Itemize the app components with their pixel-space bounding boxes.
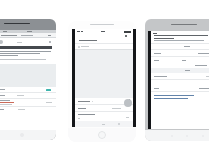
button[interactable] xyxy=(0,93,51,98)
button[interactable] xyxy=(0,100,52,105)
button[interactable] xyxy=(0,107,51,112)
button[interactable] xyxy=(154,73,209,79)
other: Edit xyxy=(126,99,130,103)
button[interactable] xyxy=(154,57,209,63)
button[interactable]: Edit xyxy=(78,98,130,104)
button[interactable] xyxy=(1,33,51,37)
button[interactable]: Expand xyxy=(154,85,209,91)
button[interactable] xyxy=(154,50,209,56)
button[interactable] xyxy=(0,87,51,92)
button[interactable] xyxy=(79,37,133,43)
